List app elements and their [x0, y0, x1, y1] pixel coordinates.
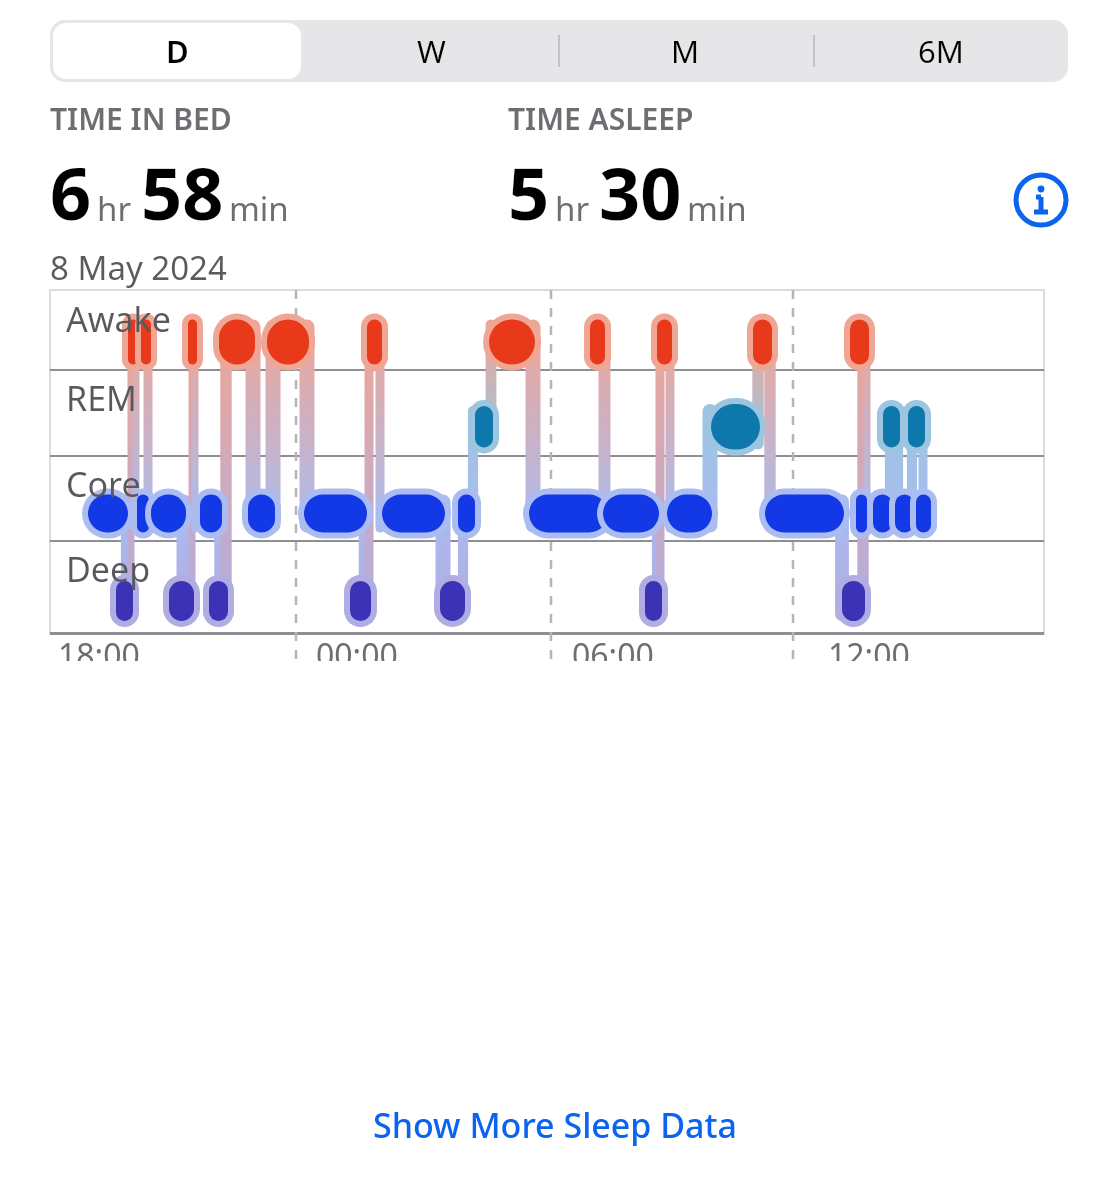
staticText: Awake [66, 296, 171, 342]
staticText: 8 May 2024 [50, 245, 227, 290]
staticText: W [417, 30, 446, 72]
staticText: M [671, 30, 700, 72]
button[interactable]: M [558, 20, 813, 82]
staticText: D [166, 30, 189, 72]
staticText: hr [97, 186, 132, 231]
staticText: 00:00 [316, 633, 398, 661]
staticText: Deep [66, 546, 151, 592]
button[interactable]: Information [1010, 169, 1072, 231]
staticText: REM [66, 375, 137, 421]
staticText: 12:00 [828, 633, 910, 661]
staticText: 5 [508, 143, 550, 241]
staticText: 18:00 [58, 633, 140, 661]
button[interactable]: Show More Sleep Data [0, 1090, 1110, 1160]
staticText: Show More Sleep Data [373, 1102, 738, 1148]
staticText: min [687, 186, 747, 231]
button[interactable]: D [50, 20, 304, 82]
staticText: Core [66, 461, 141, 507]
staticText: 30 [599, 143, 682, 241]
button[interactable]: W [304, 20, 558, 82]
staticText: TIME IN BED [50, 98, 232, 139]
staticText: 06:00 [572, 633, 654, 661]
staticText: 6M [918, 30, 964, 72]
staticText: hr [555, 186, 590, 231]
button[interactable]: 6M [813, 20, 1068, 82]
staticText: 58 [141, 143, 224, 241]
staticText: TIME ASLEEP [508, 98, 694, 139]
staticText: min [229, 186, 289, 231]
staticText: 6 [50, 143, 92, 241]
